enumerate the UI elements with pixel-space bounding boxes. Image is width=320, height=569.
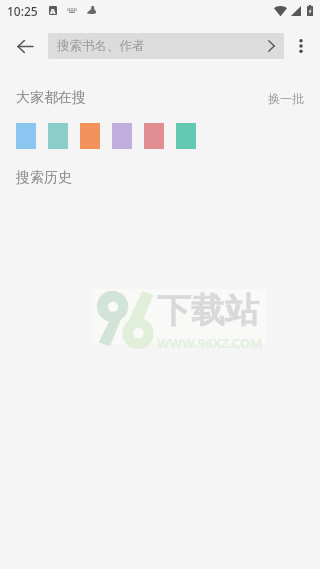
button[interactable]: 搜索书名、作者 (48, 33, 284, 59)
staticText: 10:25 (7, 3, 38, 19)
staticText: 下载站 (157, 289, 259, 332)
staticText: 搜索历史 (16, 169, 72, 187)
staticText: 大家都在搜 (16, 89, 86, 107)
button[interactable]: More options (288, 30, 314, 62)
button[interactable]: Back (9, 30, 41, 62)
staticText: A (50, 6, 56, 15)
staticText: WWW.96XZ.COM (157, 334, 263, 352)
staticText: 搜索书名、作者 (57, 38, 145, 54)
button[interactable]: 换一批 (268, 91, 304, 106)
staticText: 换一批 (268, 91, 304, 106)
